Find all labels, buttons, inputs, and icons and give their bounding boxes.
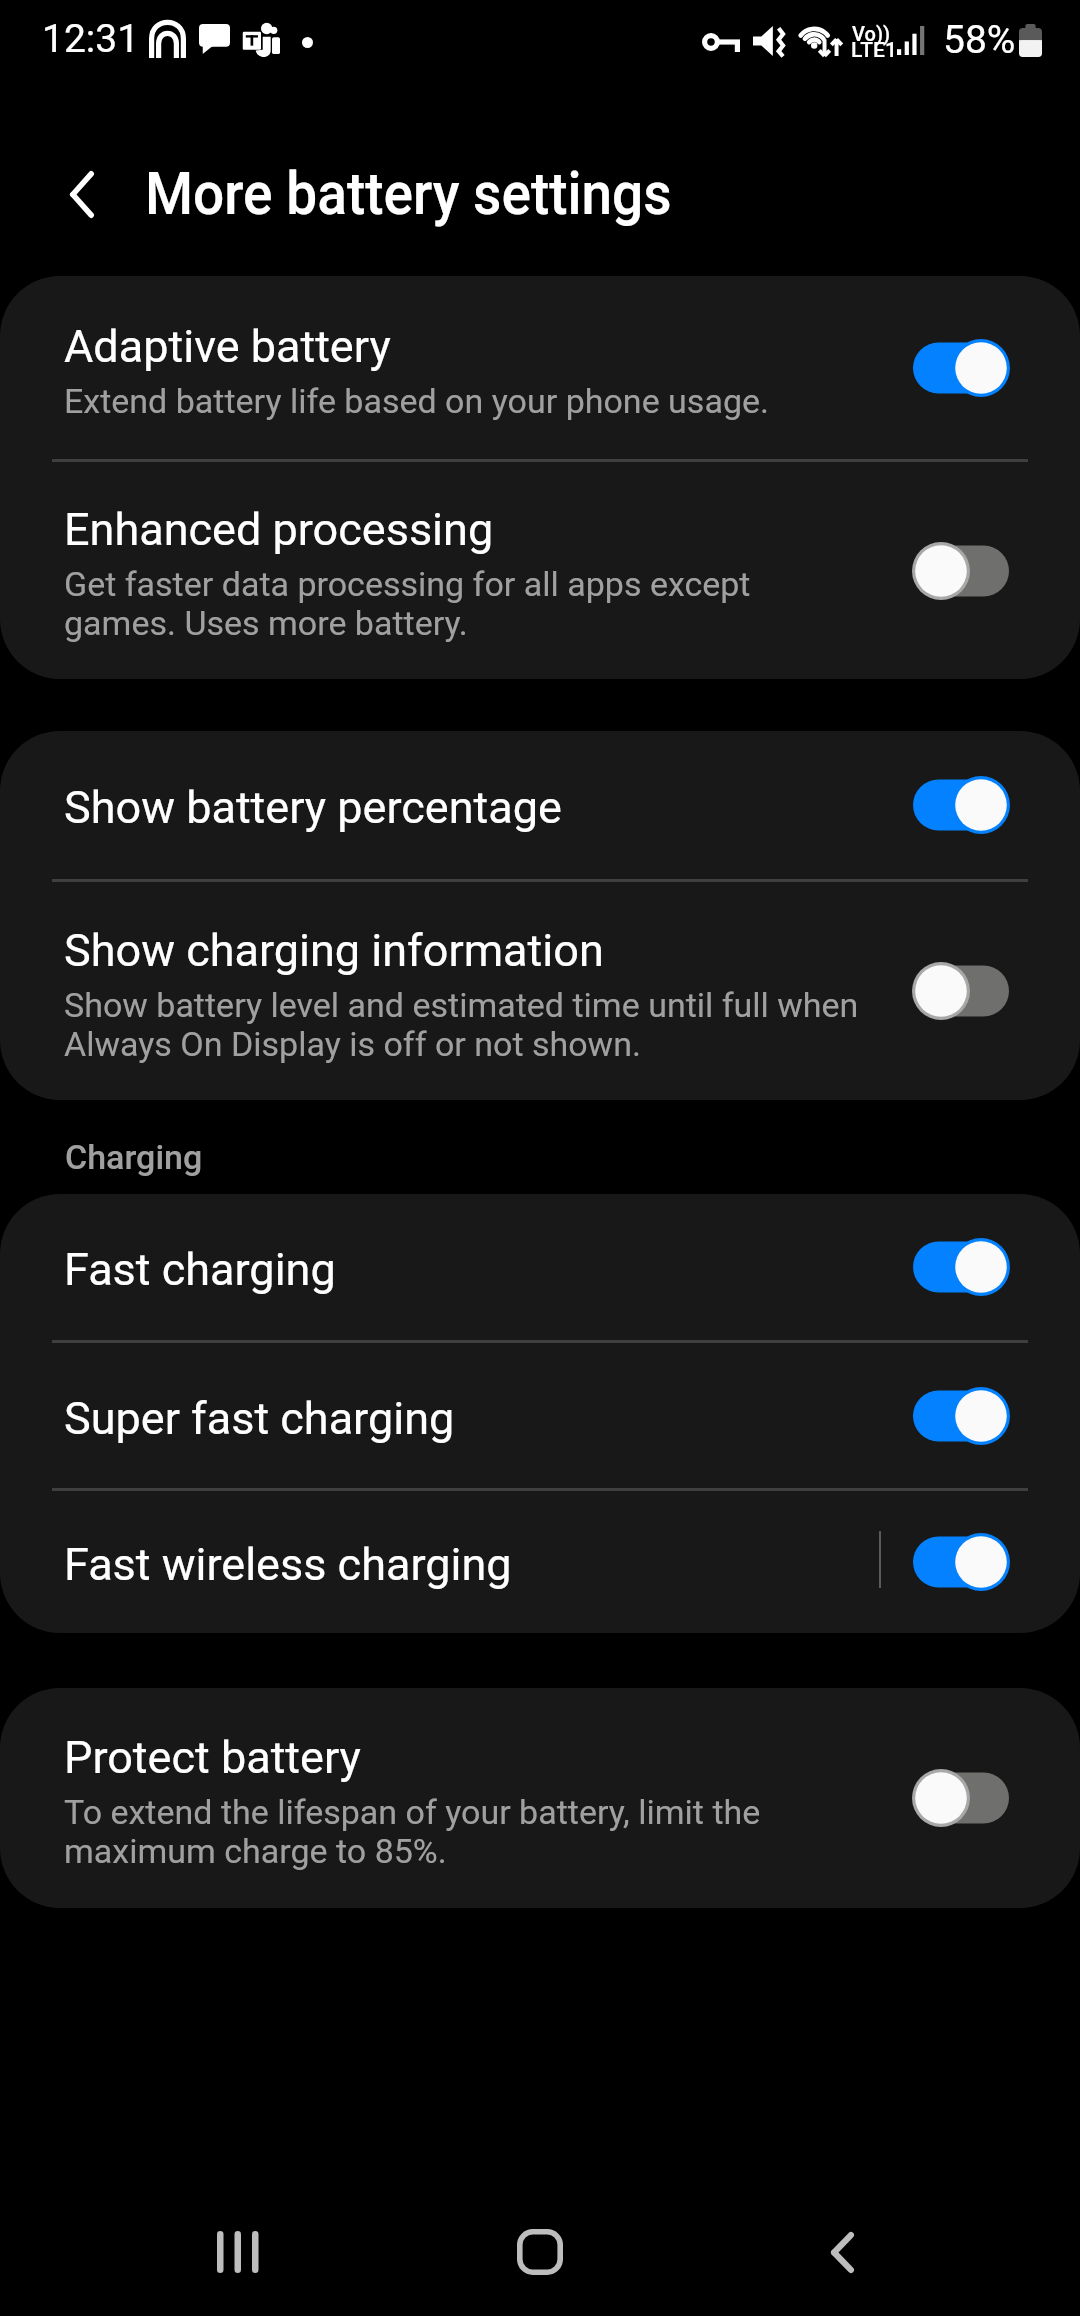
staticText: Vo)) (852, 22, 891, 45)
staticText: Get faster data processing for all apps … (64, 565, 859, 643)
button[interactable]: Recent apps (178, 2192, 298, 2312)
button[interactable]: Fast wireless charging (0, 1491, 1080, 1633)
staticText: Extend battery life based on your phone … (64, 382, 769, 421)
staticText: More battery settings (145, 159, 672, 229)
button[interactable]: Show charging information (0, 882, 1080, 1100)
staticText: 12:31 (42, 16, 140, 61)
button[interactable]: Fast charging (0, 1194, 1080, 1340)
staticText: Show battery level and estimated time un… (64, 986, 859, 1064)
button[interactable]: Navigate up (40, 152, 124, 236)
button[interactable]: Adaptive battery (0, 276, 1080, 459)
staticText: Super fast charging (64, 1393, 455, 1445)
button[interactable]: Protect battery (0, 1688, 1080, 1908)
staticText: To extend the lifespan of your battery, … (64, 1793, 859, 1871)
button[interactable]: Show battery percentage (0, 731, 1080, 879)
button[interactable]: Enhanced processing (0, 462, 1080, 679)
staticText: Adaptive battery (64, 321, 391, 373)
staticText: Enhanced processing (64, 504, 494, 556)
staticText: 58% (943, 17, 1016, 62)
staticText: LTE1 (851, 38, 897, 63)
staticText: Fast charging (64, 1244, 336, 1296)
staticText: Charging (65, 1137, 203, 1177)
button[interactable]: Super fast charging (0, 1343, 1080, 1488)
staticText: Protect battery (64, 1732, 361, 1784)
button[interactable]: Home (480, 2192, 600, 2312)
staticText: Show battery percentage (64, 782, 562, 834)
staticText: Show charging information (64, 925, 604, 977)
staticText: Fast wireless charging (64, 1539, 512, 1591)
button[interactable]: Back (782, 2192, 902, 2312)
